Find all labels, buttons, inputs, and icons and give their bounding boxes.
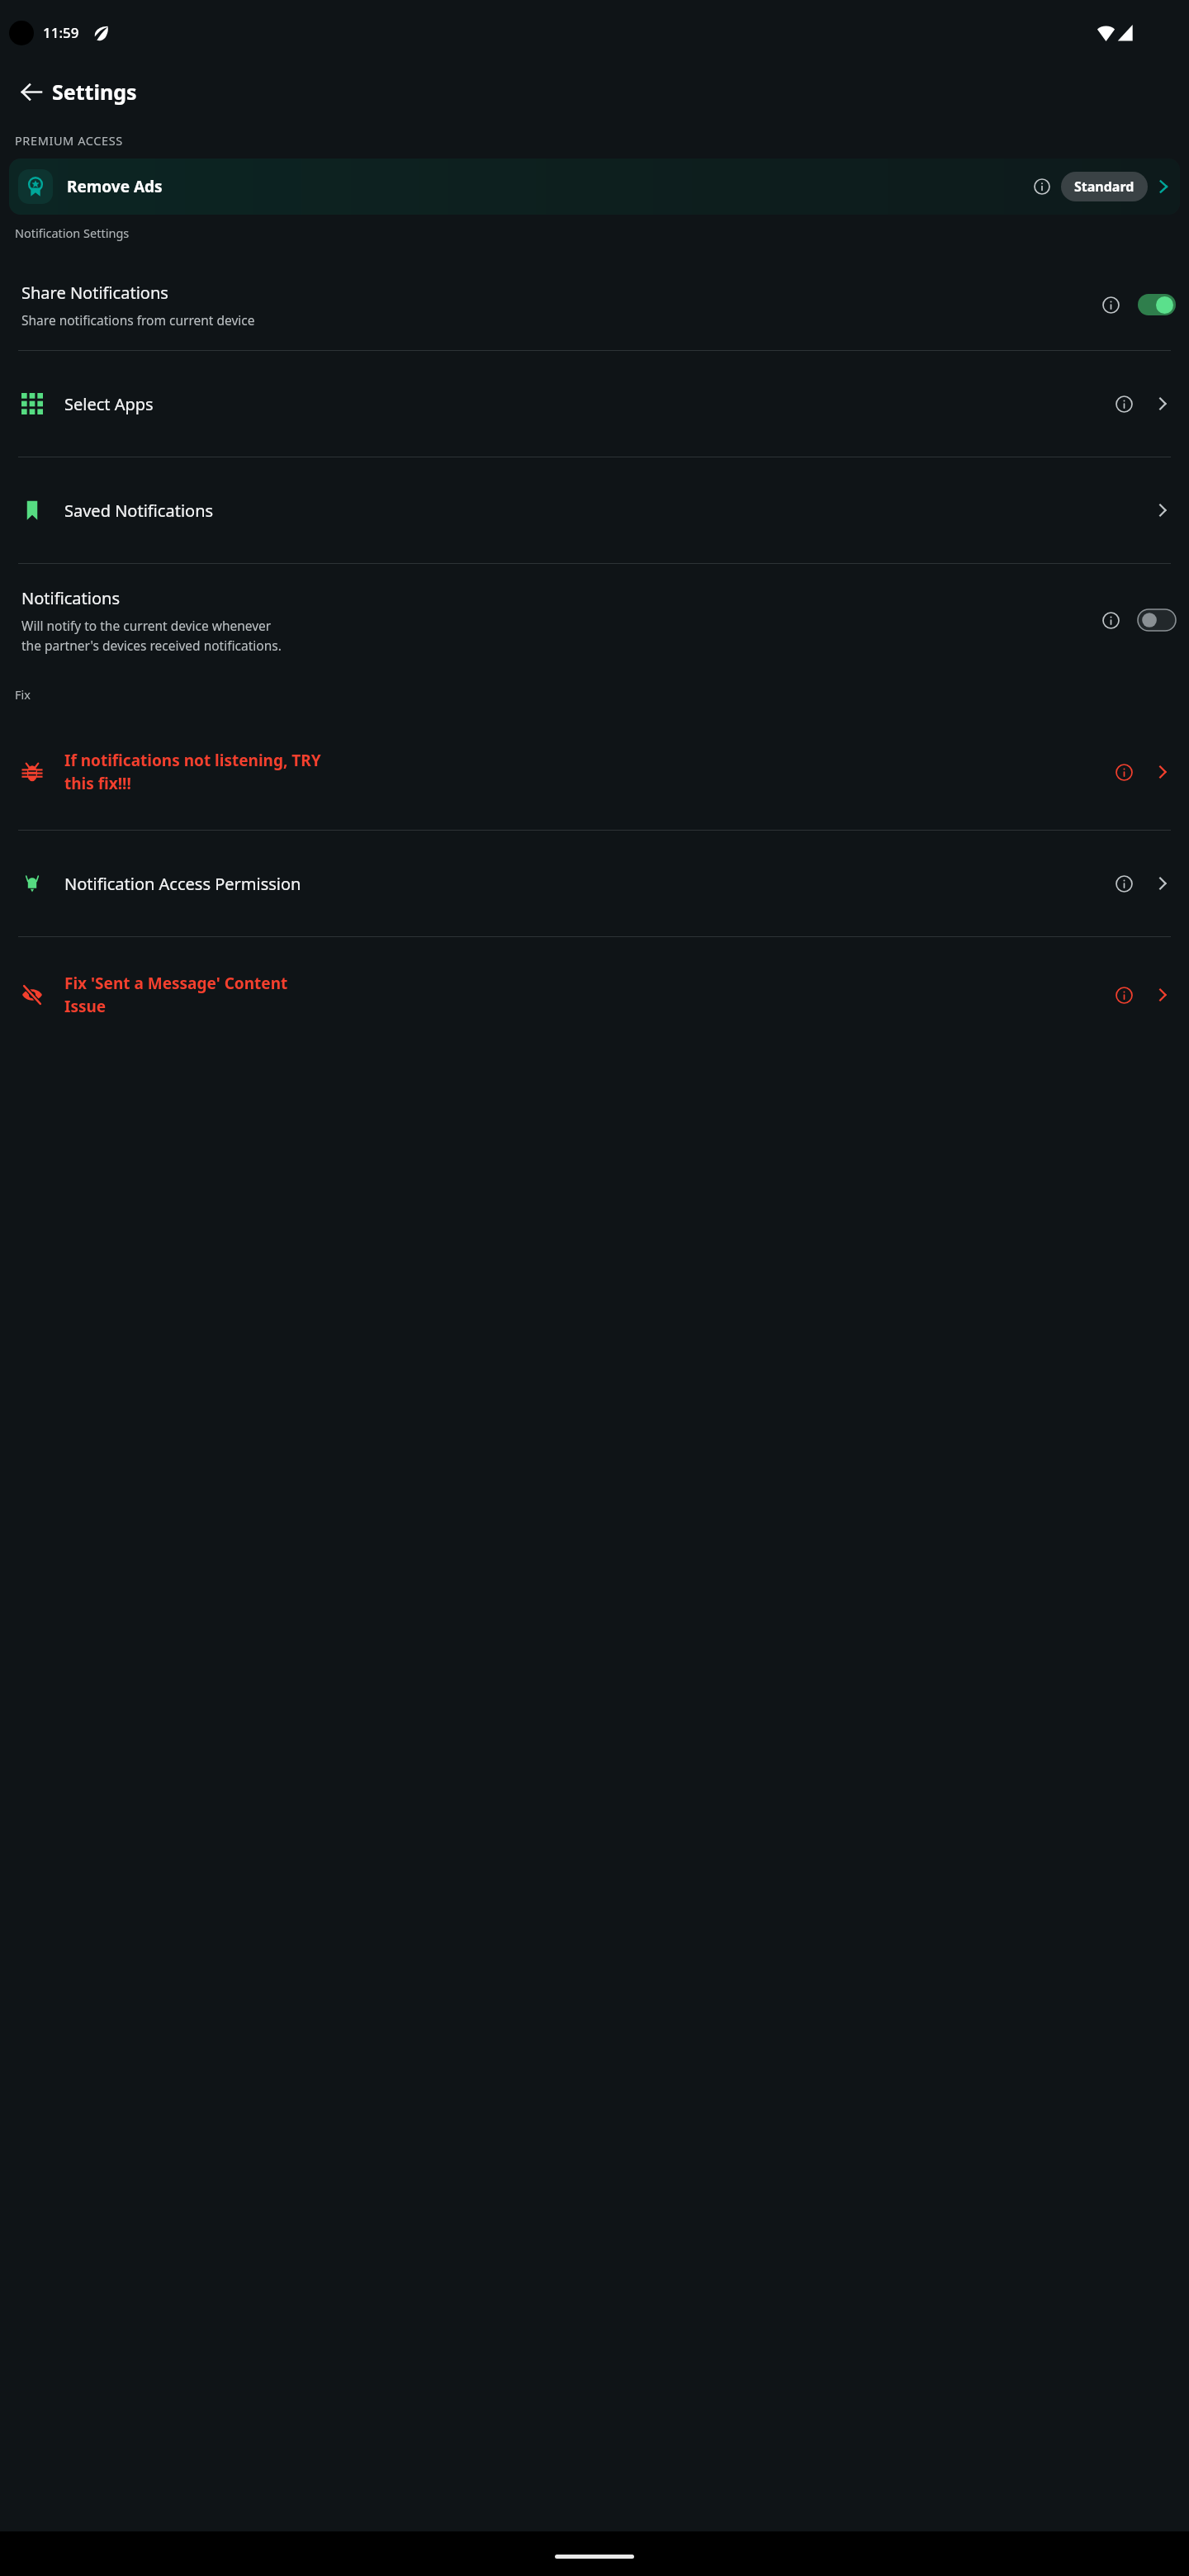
- button[interactable]: Info about Share Notifications: [1097, 291, 1125, 319]
- button[interactable]: Remove Ads: [9, 159, 1180, 215]
- staticText: Notification Access Permission: [64, 873, 1110, 895]
- staticText: Standard: [1074, 178, 1135, 196]
- staticText: If notifications not listening, TRY this…: [64, 750, 1100, 794]
- staticText: Remove Ads: [67, 176, 163, 197]
- staticText: Share notifications from current device: [21, 311, 255, 329]
- button[interactable]: Info about Sent a Message content issue: [1110, 981, 1138, 1009]
- staticText: Saved Notifications: [64, 500, 1156, 522]
- button[interactable]: Share Notifications toggle, on: [1138, 294, 1176, 315]
- staticText: Fix 'Sent a Message' Content Issue: [64, 973, 1100, 1017]
- staticText: Select Apps: [64, 393, 1110, 415]
- button[interactable]: Notifications: [0, 564, 1189, 676]
- staticText: PREMIUM ACCESS: [15, 132, 123, 149]
- staticText: Settings: [52, 78, 137, 106]
- button[interactable]: Info about notification fix: [1110, 758, 1138, 786]
- staticText: Share Notifications: [21, 282, 168, 304]
- button[interactable]: Share Notifications: [0, 259, 1189, 350]
- button[interactable]: Info about Remove Ads: [1028, 173, 1056, 201]
- button[interactable]: Fix 'Sent a Message' Content Issue: [0, 937, 1189, 1053]
- staticText: Notification Settings: [15, 225, 130, 241]
- staticText: 11:59: [43, 23, 79, 42]
- button[interactable]: Select Apps: [0, 351, 1189, 457]
- button[interactable]: Standard: [1061, 172, 1148, 201]
- button[interactable]: Info about Select Apps: [1110, 390, 1138, 418]
- staticText: Will notify to the current device whenev…: [21, 617, 282, 654]
- button[interactable]: Notifications toggle, off: [1138, 609, 1176, 631]
- staticText: Notifications: [21, 587, 120, 609]
- staticText: Fix: [15, 686, 31, 703]
- button[interactable]: Saved Notifications: [0, 457, 1189, 563]
- button[interactable]: Back: [8, 69, 53, 114]
- button[interactable]: Notification Access Permission: [0, 831, 1189, 936]
- button[interactable]: Info about Notifications: [1097, 606, 1125, 634]
- button[interactable]: Info about Notification Access Permissio…: [1110, 869, 1138, 897]
- button[interactable]: If notifications not listening, TRY this…: [0, 714, 1189, 830]
